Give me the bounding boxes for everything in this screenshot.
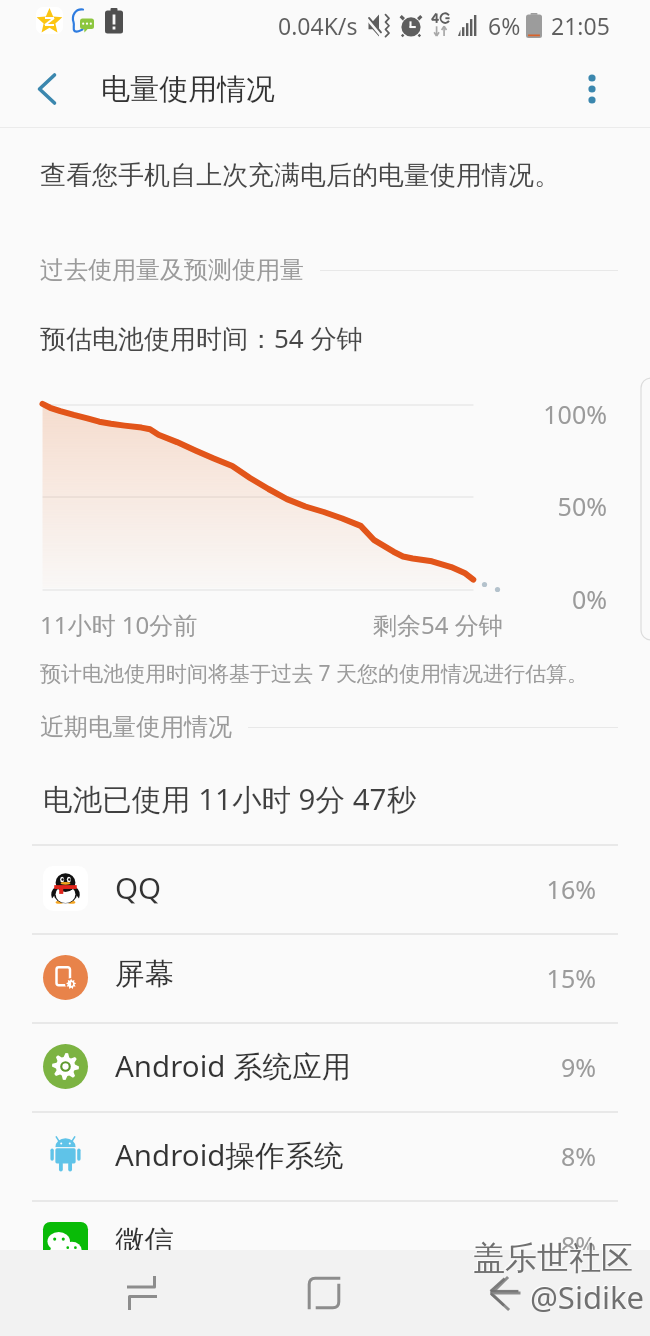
staticText: @Sidike bbox=[529, 1275, 643, 1317]
button[interactable]: QQ bbox=[0, 844, 650, 933]
staticText: 微信 bbox=[115, 1223, 174, 1260]
staticText: 15% bbox=[476, 961, 596, 995]
button[interactable]: Android操作系统 bbox=[0, 1111, 650, 1200]
staticText: 预估电池使用时间：54 分钟 bbox=[40, 320, 363, 356]
staticText: 剩余54 分钟 bbox=[373, 608, 503, 641]
button[interactable]: More options bbox=[570, 67, 614, 111]
button[interactable]: Recent apps bbox=[103, 1254, 181, 1332]
staticText: Android 系统应用 bbox=[115, 1045, 352, 1085]
staticText: 电量使用情况 bbox=[101, 71, 275, 108]
staticText: 查看您手机自上次充满电后的电量使用情况。 bbox=[40, 159, 560, 192]
button[interactable]: Android 系统应用 bbox=[0, 1022, 650, 1111]
staticText: 50% bbox=[487, 489, 607, 523]
staticText: 16% bbox=[476, 872, 596, 906]
button[interactable]: 屏幕 bbox=[0, 933, 650, 1022]
staticText: 0% bbox=[487, 582, 607, 616]
staticText: 0.04K/s bbox=[278, 10, 358, 41]
button[interactable]: 微信 bbox=[0, 1200, 650, 1289]
staticText: 屏幕 bbox=[115, 956, 174, 993]
staticText: 6% bbox=[488, 10, 521, 41]
staticText: 21:05 bbox=[551, 10, 610, 41]
staticText: 预计电池使用时间将基于过去 7 天您的使用情况进行估算。 bbox=[40, 659, 588, 688]
staticText: 9% bbox=[476, 1050, 596, 1084]
staticText: Android操作系统 bbox=[115, 1134, 344, 1174]
staticText: 电池已使用 11小时 9分 47秒 bbox=[43, 778, 416, 818]
staticText: 100% bbox=[487, 397, 607, 431]
staticText: 近期电量使用情况 bbox=[40, 712, 232, 742]
button[interactable]: Home bbox=[285, 1254, 363, 1332]
staticText: 8% bbox=[476, 1228, 596, 1262]
staticText: 盖乐世社区 bbox=[473, 1238, 633, 1278]
button[interactable]: Back bbox=[466, 1254, 544, 1332]
staticText: @Sidike bbox=[530, 1276, 644, 1318]
button[interactable]: Back bbox=[21, 63, 73, 115]
staticText: 8% bbox=[476, 1139, 596, 1173]
staticText: 过去使用量及预测使用量 bbox=[40, 255, 304, 285]
staticText: 盖乐世社区 bbox=[472, 1237, 632, 1277]
staticText: QQ bbox=[115, 867, 162, 907]
staticText: 11小时 10分前 bbox=[40, 608, 198, 641]
